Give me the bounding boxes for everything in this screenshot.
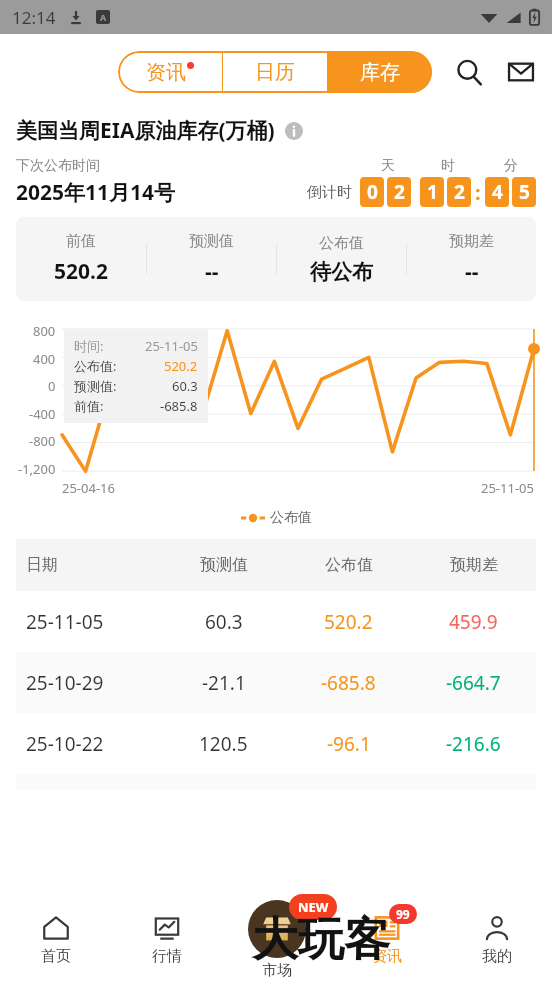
button[interactable]: 25-11-05 [16, 591, 536, 652]
button[interactable]: 行情 [111, 897, 222, 983]
staticText: 2 [394, 179, 405, 205]
staticText: -664.7 [446, 670, 501, 696]
staticText: 前值: [74, 397, 104, 415]
button[interactable]: 公布值 [277, 217, 406, 301]
staticText: -1,200 [18, 460, 56, 478]
staticText: 美国当周EIA原油库存(万桶) [16, 116, 275, 145]
staticText: 5 [519, 179, 530, 205]
staticText: 25-04-16 [62, 479, 115, 497]
button[interactable]: 我的 [442, 897, 552, 983]
staticText: 日期 [26, 555, 58, 575]
staticText: 公布值 [325, 555, 373, 575]
staticText: 库存 [360, 60, 400, 85]
staticText: 大玩客 [252, 911, 390, 969]
button[interactable]: 25-10-22 [16, 713, 536, 774]
staticText: 120.5 [199, 731, 248, 757]
staticText: 99 [396, 906, 410, 922]
staticText: 倒计时 [307, 183, 352, 202]
staticText: -400 [29, 405, 56, 423]
button[interactable]: 前值 [16, 217, 146, 301]
staticText: 预期差 [450, 555, 498, 575]
staticText: 25-10-22 [26, 731, 104, 757]
staticText: A [100, 11, 107, 23]
staticText: 0 [48, 377, 56, 395]
staticText: -685.8 [160, 397, 198, 415]
staticText: 公布值 [270, 509, 312, 527]
button[interactable]: Search [446, 49, 492, 95]
staticText: 待公布 [310, 259, 373, 285]
staticText: 日历 [255, 60, 295, 85]
staticText: -- [205, 257, 219, 286]
staticText: 预测值: [74, 377, 117, 395]
staticText: 分 [504, 157, 518, 175]
staticText: -- [465, 257, 479, 286]
staticText: -800 [29, 432, 56, 450]
button[interactable]: 资讯 [118, 51, 222, 93]
staticText: 预期差 [449, 232, 494, 251]
staticText: 时 [441, 157, 455, 175]
staticText: 25-11-05 [145, 337, 198, 355]
staticText: 公布值 [319, 234, 364, 253]
staticText: 行情 [152, 947, 182, 966]
staticText: 459.9 [449, 609, 498, 635]
staticText: 520.2 [324, 609, 373, 635]
button[interactable]: 库存 [328, 51, 432, 93]
staticText: 资讯 [372, 947, 402, 966]
button[interactable]: 99 [332, 897, 442, 983]
button[interactable]: Info [283, 120, 305, 142]
staticText: 25-11-05 [26, 609, 104, 635]
staticText: 1 [427, 179, 438, 205]
staticText: 我的 [482, 947, 512, 966]
staticText: 资讯 [146, 60, 186, 85]
button[interactable]: 25-10-29 [16, 652, 536, 713]
staticText: -685.8 [321, 670, 376, 696]
staticText: 预测值 [189, 232, 234, 251]
staticText: -21.1 [202, 670, 246, 696]
staticText: 前值 [66, 232, 96, 251]
staticText: 4 [492, 179, 503, 205]
staticText: 25-11-05 [481, 479, 534, 497]
staticText: 2025年11月14号 [16, 178, 176, 207]
staticText: 60.3 [205, 609, 243, 635]
button[interactable]: 预期差 [407, 217, 536, 301]
staticText: 60.3 [172, 377, 198, 395]
button[interactable]: 日历 [223, 51, 327, 93]
staticText: 0 [367, 179, 378, 205]
staticText: NEW [298, 898, 329, 916]
staticText: 800 [33, 322, 56, 340]
staticText: 市场 [262, 961, 292, 980]
staticText: 天 [381, 157, 395, 175]
staticText: 预测值 [200, 555, 248, 575]
button[interactable]: 预测值 [147, 217, 276, 301]
staticText: 2 [454, 179, 465, 205]
staticText: 首页 [41, 947, 71, 966]
staticText: 520.2 [54, 257, 108, 286]
button[interactable]: NEW [248, 897, 306, 983]
staticText: 400 [33, 350, 56, 368]
staticText: 时间: [74, 337, 104, 355]
staticText: : [475, 179, 481, 206]
button[interactable]: Messages [498, 49, 544, 95]
staticText: -96.1 [327, 731, 371, 757]
staticText: 520.2 [164, 357, 198, 375]
staticText: 25-10-29 [26, 670, 104, 696]
staticText: -216.6 [446, 731, 501, 757]
staticText: 公布值: [74, 357, 117, 375]
button[interactable]: 首页 [0, 897, 111, 983]
staticText: 下次公布时间 [16, 157, 100, 175]
staticText: 12:14 [12, 6, 56, 29]
